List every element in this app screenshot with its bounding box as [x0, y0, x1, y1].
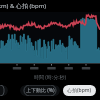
staticText: …cm) — [0, 87, 4, 94]
staticText: 上下動比 (%) — [26, 87, 55, 94]
staticText: (km) & 心拍 (bpm) — [0, 2, 47, 10]
staticText: 心拍(bpm) — [67, 87, 92, 94]
button[interactable]: 心拍(bpm) — [63, 85, 96, 96]
button[interactable]: …cm) — [0, 85, 8, 96]
staticText: 時間 (時:分:秒) — [34, 74, 66, 81]
button[interactable]: 上下動比 (%) — [20, 85, 60, 96]
